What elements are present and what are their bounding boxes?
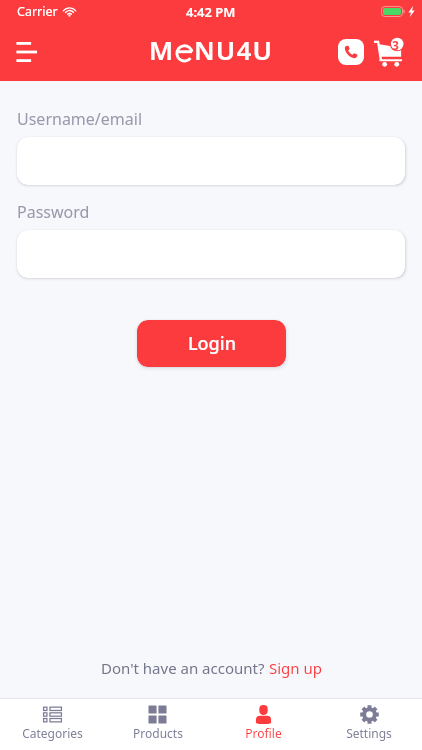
button[interactable]: Categories bbox=[0, 699, 105, 750]
staticText: Sign up bbox=[269, 658, 322, 678]
staticText: Carrier bbox=[17, 3, 58, 20]
button[interactable]: Products bbox=[105, 699, 210, 750]
staticText: Categories bbox=[22, 725, 83, 741]
staticText: Username/email bbox=[17, 108, 143, 130]
button[interactable]: Cart, 3 items bbox=[372, 36, 404, 68]
staticText: Password bbox=[17, 201, 90, 223]
staticText: 4:42 PM bbox=[186, 3, 236, 21]
button[interactable]: Profile bbox=[210, 699, 316, 750]
staticText: Login bbox=[188, 331, 236, 356]
button[interactable]: Call bbox=[338, 39, 364, 65]
staticText: 3 bbox=[392, 37, 399, 53]
button[interactable]: Menu bbox=[9, 35, 43, 69]
button[interactable]: Settings bbox=[316, 699, 422, 750]
staticText: Profile bbox=[245, 725, 282, 741]
staticText: NU4U bbox=[194, 32, 274, 67]
staticText: Don't have an account? bbox=[101, 658, 269, 678]
staticText: Settings bbox=[346, 725, 392, 741]
staticText: M bbox=[149, 32, 175, 67]
staticText: Products bbox=[133, 725, 183, 741]
button[interactable]: Sign up bbox=[269, 658, 322, 678]
button[interactable]: Login bbox=[137, 320, 286, 367]
